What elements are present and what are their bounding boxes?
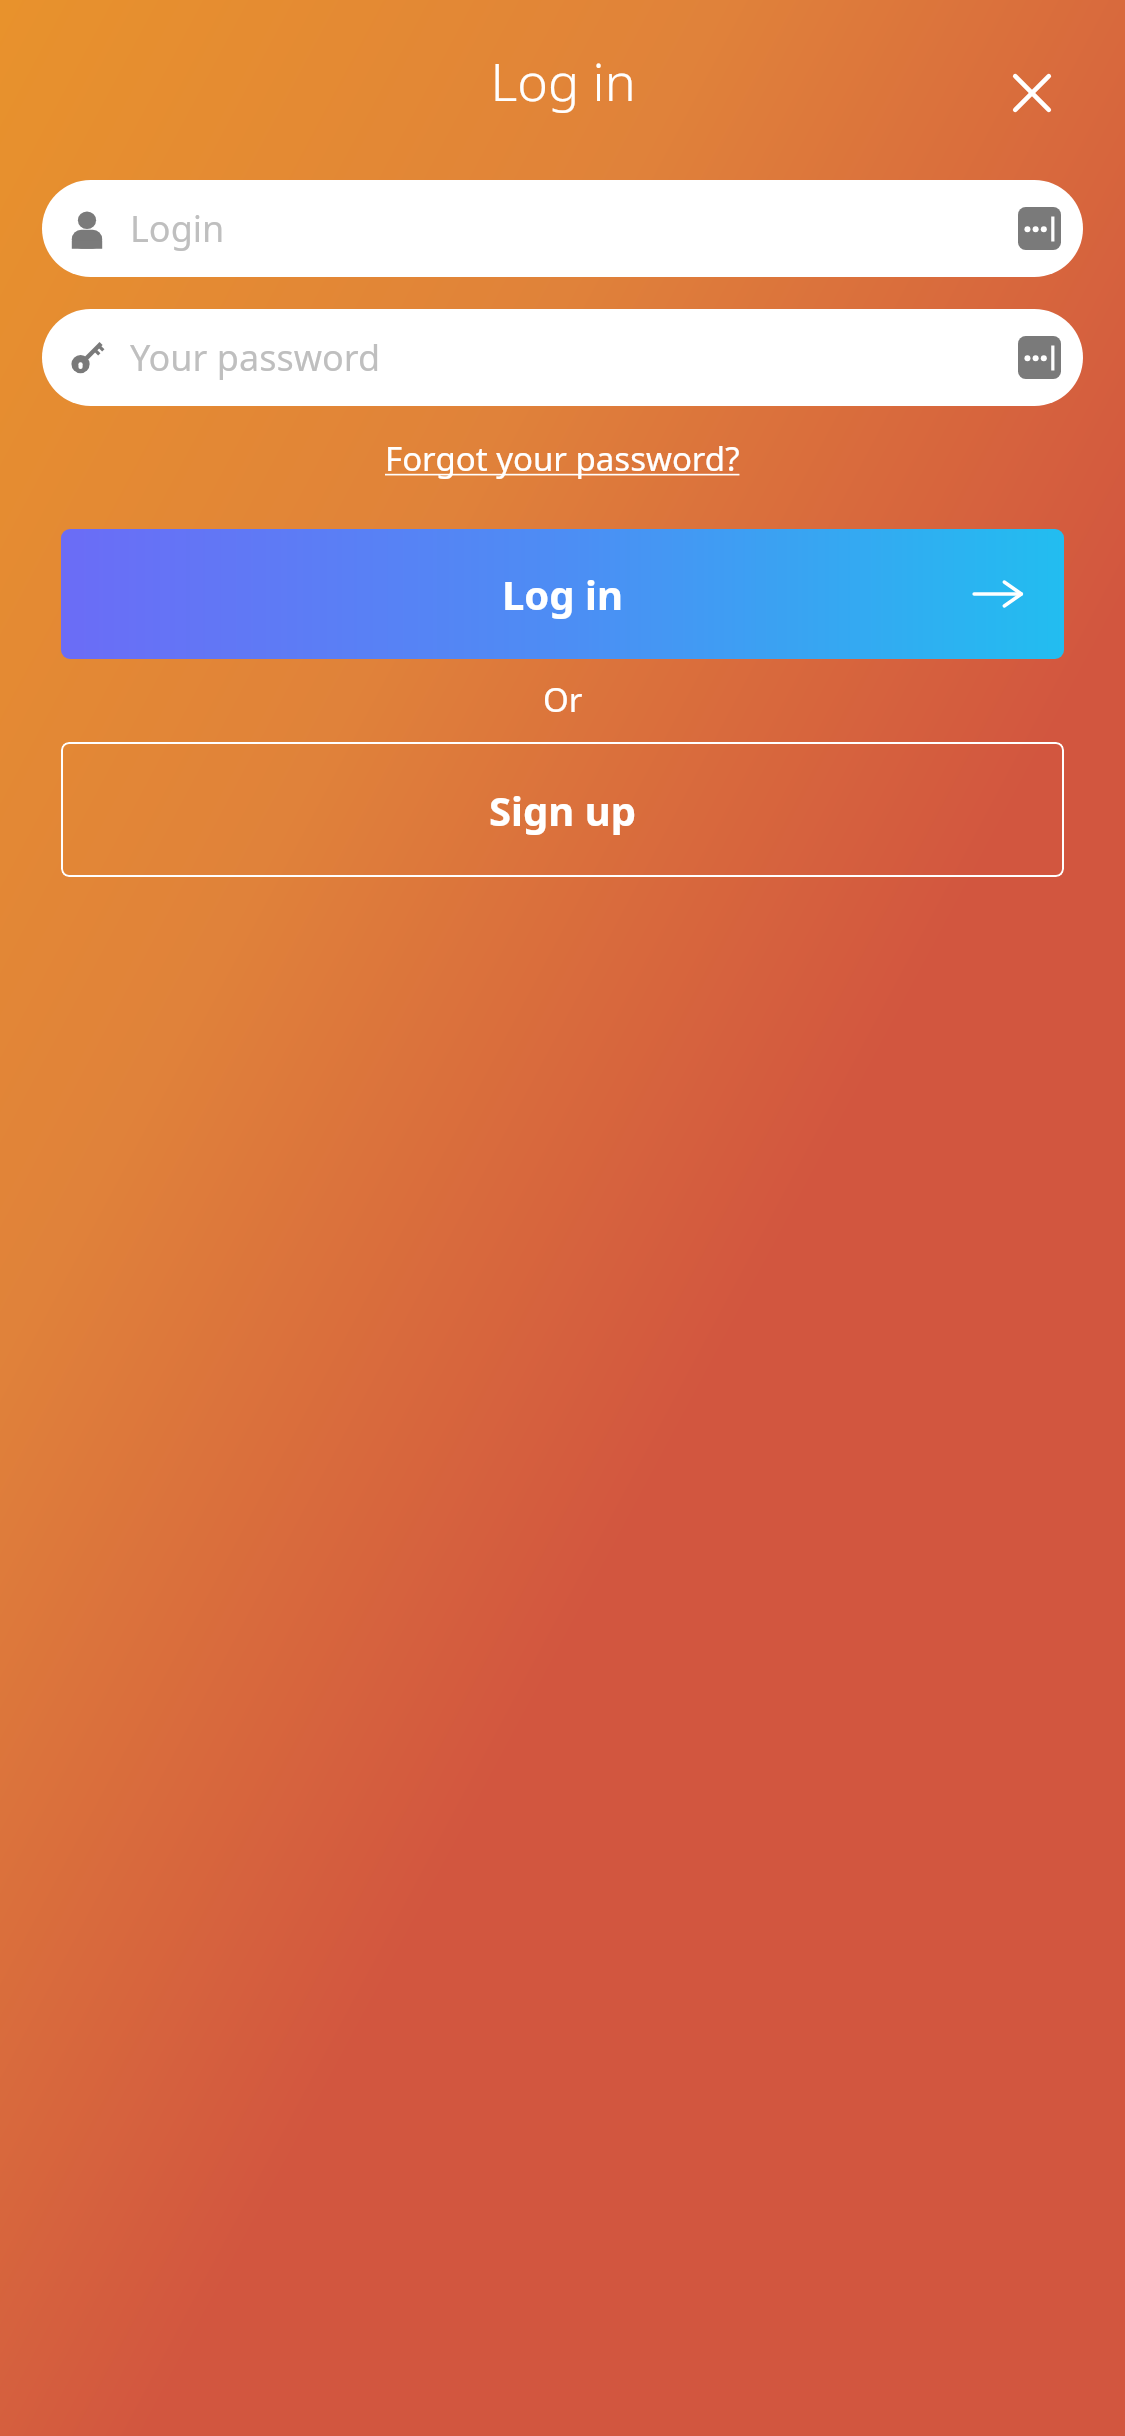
button[interactable]: Sign up bbox=[61, 742, 1064, 877]
staticText: Your password bbox=[130, 333, 1018, 382]
staticText: Forgot your password? bbox=[385, 436, 740, 481]
button[interactable]: Log in bbox=[61, 529, 1064, 659]
button[interactable]: Forgot your password? bbox=[377, 428, 748, 489]
staticText: Login bbox=[130, 204, 1018, 253]
button[interactable]: Close bbox=[1001, 62, 1063, 124]
button[interactable]: Your password bbox=[42, 309, 1083, 406]
button[interactable]: Login bbox=[42, 180, 1083, 277]
staticText: Log in bbox=[490, 45, 636, 116]
staticText: Sign up bbox=[489, 783, 636, 837]
staticText: Log in bbox=[502, 567, 623, 621]
staticText: Or bbox=[543, 677, 583, 722]
